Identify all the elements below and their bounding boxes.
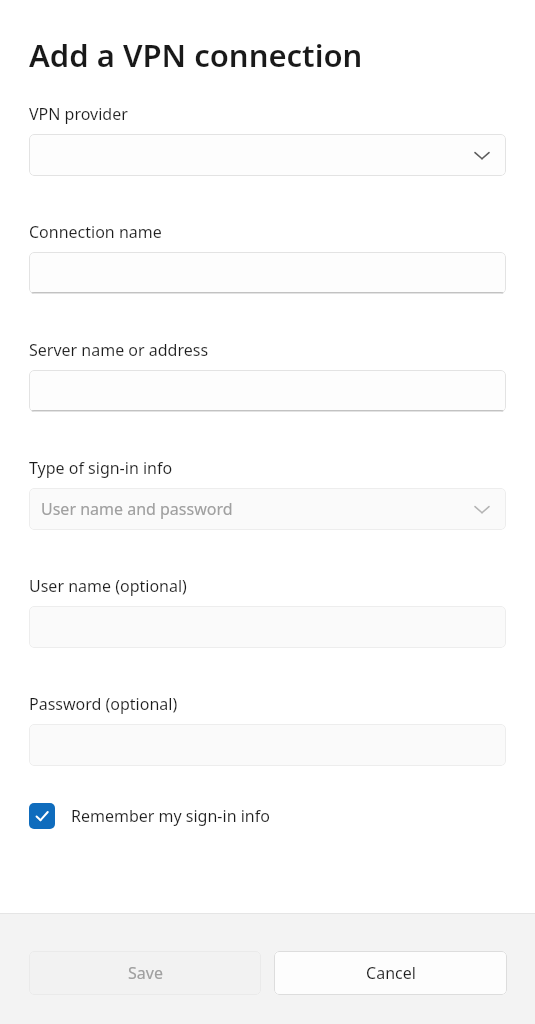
staticText: VPN provider bbox=[29, 103, 128, 125]
staticText: Save bbox=[128, 962, 163, 984]
button[interactable] bbox=[29, 370, 506, 412]
staticText: Type of sign-in info bbox=[29, 457, 173, 479]
button[interactable]: Remember my sign-in info bbox=[29, 803, 506, 829]
staticText: Server name or address bbox=[29, 339, 209, 361]
staticText: User name (optional) bbox=[29, 575, 187, 597]
staticText: Add a VPN connection bbox=[29, 34, 363, 76]
staticText: Cancel bbox=[366, 962, 416, 984]
button: Save bbox=[29, 951, 261, 995]
staticText: Password (optional) bbox=[29, 693, 178, 715]
button[interactable] bbox=[29, 252, 506, 294]
button[interactable]: Open list bbox=[29, 134, 506, 176]
staticText: Connection name bbox=[29, 221, 162, 243]
button[interactable]: Open list bbox=[29, 488, 506, 530]
staticText: Remember my sign-in info bbox=[71, 805, 270, 827]
button[interactable]: Cancel bbox=[274, 951, 507, 995]
staticText: User name and password bbox=[41, 498, 233, 520]
